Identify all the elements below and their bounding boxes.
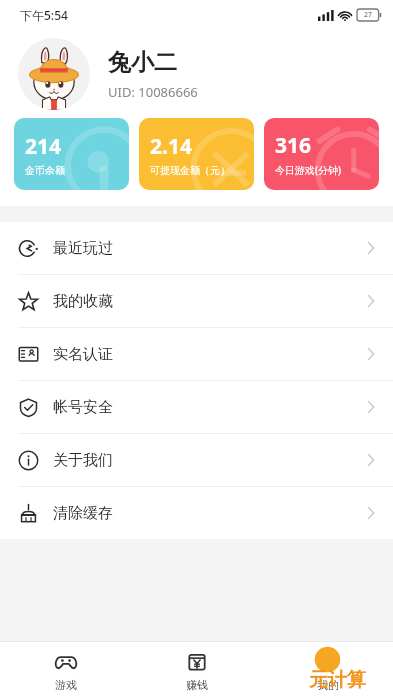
button[interactable]: 清除缓存	[0, 487, 393, 539]
button[interactable]: 214	[14, 118, 129, 190]
staticText: 我的	[317, 678, 339, 692]
staticText: 清除缓存	[53, 504, 113, 523]
button[interactable]: 兔小二	[0, 30, 393, 118]
staticText: 金币余额	[25, 164, 65, 177]
staticText: 2.14	[150, 132, 192, 161]
button[interactable]: 赚钱	[131, 642, 262, 700]
button[interactable]: 帐号安全	[0, 381, 393, 433]
button[interactable]: 实名认证	[0, 328, 393, 380]
button[interactable]: 2.14	[139, 118, 254, 190]
staticText: 最近玩过	[53, 239, 113, 258]
staticText: 27	[364, 10, 373, 20]
button[interactable]: 我的收藏	[0, 275, 393, 327]
staticText: 316	[275, 131, 312, 160]
staticText: 兔小二	[108, 48, 177, 77]
staticText: 帐号安全	[53, 398, 113, 417]
button[interactable]: 最近玩过	[0, 222, 393, 274]
staticText: 今日游戏(分钟)	[275, 163, 341, 177]
staticText: UID: 10086666	[108, 83, 198, 101]
button[interactable]: 316	[264, 118, 379, 190]
staticText: 关于我们	[53, 451, 113, 470]
staticText: 214	[25, 132, 62, 161]
staticText: 实名认证	[53, 345, 113, 364]
button[interactable]: 我的	[262, 642, 393, 700]
staticText: 元计算	[309, 668, 366, 692]
staticText: 可提现金额（元）	[150, 164, 230, 177]
button[interactable]: 关于我们	[0, 434, 393, 486]
staticText: 下午5:54	[20, 7, 68, 23]
staticText: 我的收藏	[53, 292, 113, 311]
staticText: 赚钱	[186, 678, 208, 692]
button[interactable]: 游戏	[0, 642, 131, 700]
staticText: 游戏	[55, 678, 77, 692]
